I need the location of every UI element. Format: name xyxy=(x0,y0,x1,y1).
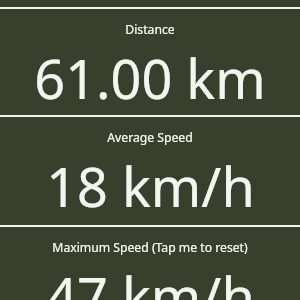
staticText: Maximum Speed (Tap me to reset) xyxy=(52,239,248,256)
staticText: 18 km/h xyxy=(46,149,255,223)
staticText: 47 km/h xyxy=(46,259,255,300)
button[interactable]: Average Speed xyxy=(0,115,300,225)
button[interactable]: Maximum Speed (Tap me to reset) xyxy=(0,225,300,300)
staticText: 61.00 km xyxy=(34,41,266,115)
button[interactable]: Distance xyxy=(0,7,300,115)
staticText: Average Speed xyxy=(107,129,193,146)
staticText: Distance xyxy=(125,21,175,38)
